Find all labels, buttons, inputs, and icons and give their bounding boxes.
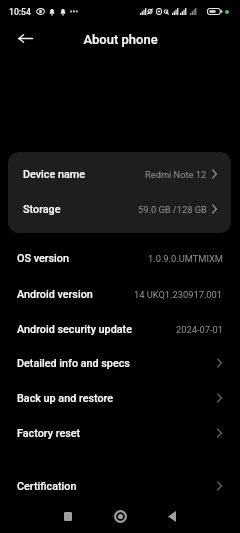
staticText: 14 UKQ1.230917.001: [134, 289, 223, 300]
staticText: 1.0.9.0.UMTMIXM: [148, 253, 223, 264]
button[interactable]: Recents: [50, 500, 86, 533]
staticText: About phone: [83, 32, 158, 47]
button[interactable]: Detailed info and specs: [0, 346, 240, 380]
button[interactable]: Back: [10, 23, 40, 53]
button[interactable]: Certification: [0, 469, 240, 503]
staticText: Device name: [23, 168, 85, 181]
staticText: OS version: [17, 252, 69, 265]
staticText: 2024-07-01: [176, 324, 223, 335]
staticText: 59.0 GB /128 GB: [138, 204, 207, 215]
button[interactable]: Device name: [8, 157, 231, 191]
staticText: Detailed info and specs: [17, 357, 130, 370]
button[interactable]: Home: [102, 500, 138, 533]
button[interactable]: Storage: [8, 192, 231, 226]
staticText: Factory reset: [17, 427, 81, 440]
staticText: Android version: [17, 288, 93, 301]
staticText: Storage: [23, 203, 61, 216]
staticText: Back up and restore: [17, 392, 114, 405]
staticText: Certification: [17, 480, 77, 493]
button[interactable]: Back: [154, 500, 190, 533]
staticText: Android security update: [17, 323, 132, 336]
staticText: 10:54: [9, 7, 31, 17]
button[interactable]: Android security update: [0, 312, 240, 346]
button[interactable]: Factory reset: [0, 416, 240, 450]
button[interactable]: OS version: [0, 241, 240, 275]
button[interactable]: Back up and restore: [0, 381, 240, 415]
button[interactable]: Android version: [0, 277, 240, 311]
staticText: Redmi Note 12: [145, 169, 207, 180]
